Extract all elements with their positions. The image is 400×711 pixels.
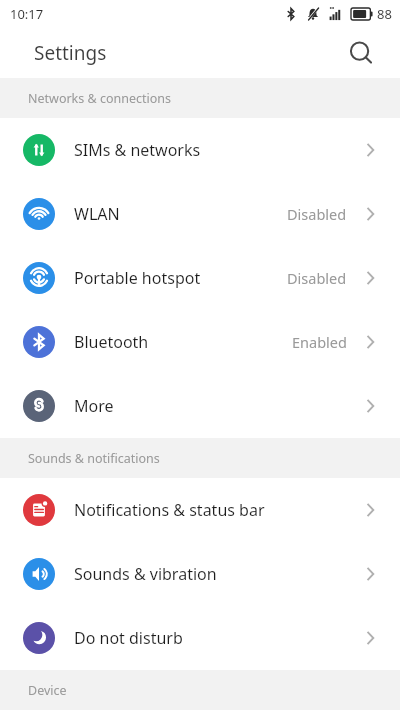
button[interactable]: SIMs & networks [0, 118, 400, 182]
staticText: Notifications & status bar [74, 499, 265, 521]
staticText: Bluetooth [74, 331, 149, 353]
staticText: Device [28, 682, 67, 699]
staticText: Sounds & notifications [28, 450, 160, 467]
staticText: Disabled [287, 268, 347, 288]
button[interactable]: Search [344, 36, 378, 70]
button[interactable]: Bluetooth [0, 310, 400, 374]
staticText: SIMs & networks [74, 139, 201, 161]
button[interactable]: Do not disturb [0, 606, 400, 670]
staticText: WLAN [74, 203, 120, 225]
staticText: Portable hotspot [74, 267, 201, 289]
staticText: Sounds & vibration [74, 563, 217, 585]
button[interactable]: Portable hotspot [0, 246, 400, 310]
button[interactable]: WLAN [0, 182, 400, 246]
staticText: Disabled [287, 204, 347, 224]
staticText: 88 [377, 5, 392, 23]
staticText: More [74, 395, 114, 417]
button[interactable]: More [0, 374, 400, 438]
staticText: Enabled [292, 332, 347, 352]
staticText: 10:17 [10, 5, 44, 23]
staticText: Networks & connections [28, 90, 172, 107]
button[interactable]: Notifications & status bar [0, 478, 400, 542]
staticText: Do not disturb [74, 627, 183, 649]
staticText: Settings [34, 40, 107, 66]
button[interactable]: Sounds & vibration [0, 542, 400, 606]
